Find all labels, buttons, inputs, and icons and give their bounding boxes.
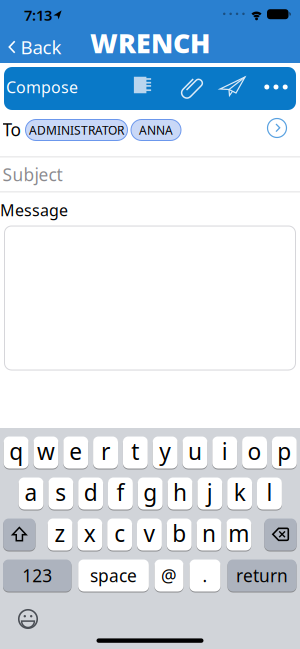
button[interactable]: t <box>123 436 148 469</box>
staticText: WRENCH <box>90 25 210 61</box>
staticText: space <box>90 564 137 587</box>
staticText: i <box>222 436 228 466</box>
button[interactable]: v <box>137 518 162 551</box>
button[interactable]: ANNA <box>131 119 181 140</box>
button[interactable]: x <box>77 518 102 551</box>
button[interactable]: c <box>107 518 132 551</box>
button[interactable]: More <box>264 84 288 89</box>
staticText: Compose <box>6 76 78 98</box>
staticText: j <box>207 477 213 507</box>
button[interactable]: d <box>78 477 103 510</box>
staticText: @ <box>161 564 177 587</box>
staticText: y <box>159 436 171 466</box>
staticText: u <box>188 436 202 466</box>
staticText: e <box>69 436 82 466</box>
staticText: l <box>266 477 272 507</box>
staticText: n <box>202 518 216 548</box>
button[interactable]: y <box>153 436 178 469</box>
button[interactable]: g <box>138 477 163 510</box>
button[interactable]: b <box>167 518 192 551</box>
staticText: z <box>54 518 65 548</box>
staticText: k <box>234 477 246 507</box>
button[interactable]: s <box>48 477 73 510</box>
button[interactable]: i <box>212 436 237 469</box>
staticText: r <box>101 436 110 466</box>
button[interactable]: return <box>227 559 296 592</box>
staticText: d <box>84 477 98 507</box>
button[interactable]: . <box>189 559 220 592</box>
staticText: s <box>55 477 66 507</box>
button[interactable]: 123 <box>3 559 71 592</box>
staticText: o <box>247 436 261 466</box>
button[interactable]: j <box>197 477 222 510</box>
staticText: Subject <box>2 163 62 186</box>
staticText: g <box>143 477 157 507</box>
button[interactable]: r <box>93 436 118 469</box>
staticText: ADMINISTRATOR <box>29 122 124 138</box>
staticText: m <box>228 518 249 548</box>
button[interactable]: space <box>78 559 149 592</box>
staticText: To <box>2 118 20 141</box>
staticText: 123 <box>22 564 52 587</box>
staticText: w <box>37 436 55 466</box>
button[interactable]: @ <box>154 559 183 592</box>
button[interactable]: k <box>227 477 252 510</box>
button[interactable]: e <box>63 436 88 469</box>
staticText: p <box>277 436 291 466</box>
button[interactable]: m <box>226 518 251 551</box>
button[interactable]: u <box>182 436 207 469</box>
button[interactable]: Shift <box>3 518 35 551</box>
staticText: x <box>84 518 96 548</box>
staticText: ANNA <box>139 122 173 138</box>
staticText: f <box>116 477 124 507</box>
staticText: a <box>25 477 38 507</box>
button[interactable]: a <box>19 477 43 510</box>
button[interactable]: Emoji <box>16 607 40 631</box>
button[interactable]: Templates <box>134 77 151 93</box>
button[interactable]: h <box>168 477 192 510</box>
button[interactable]: l <box>257 477 282 510</box>
button[interactable]: o <box>242 436 267 469</box>
button[interactable]: q <box>4 436 29 469</box>
button[interactable]: Send <box>220 77 246 97</box>
staticText: t <box>131 436 139 466</box>
staticText: 7:13 <box>24 5 52 25</box>
button[interactable]: w <box>33 436 58 469</box>
button[interactable]: n <box>197 518 221 551</box>
staticText: q <box>9 436 23 466</box>
button[interactable]: z <box>48 518 72 551</box>
button[interactable]: Attach <box>180 73 206 100</box>
button[interactable]: Delete <box>264 518 297 551</box>
staticText: v <box>143 518 155 548</box>
staticText: b <box>172 518 186 548</box>
staticText: return <box>236 564 288 587</box>
staticText: Back <box>20 35 61 59</box>
button[interactable]: Back <box>8 35 61 59</box>
button[interactable]: Expand recipients <box>266 117 288 139</box>
button[interactable]: ADMINISTRATOR <box>25 119 127 140</box>
staticText: . <box>202 564 207 587</box>
button[interactable]: p <box>272 436 297 469</box>
staticText: h <box>173 477 187 507</box>
staticText: Message <box>0 199 68 221</box>
button[interactable]: f <box>108 477 133 510</box>
staticText: c <box>114 518 125 548</box>
